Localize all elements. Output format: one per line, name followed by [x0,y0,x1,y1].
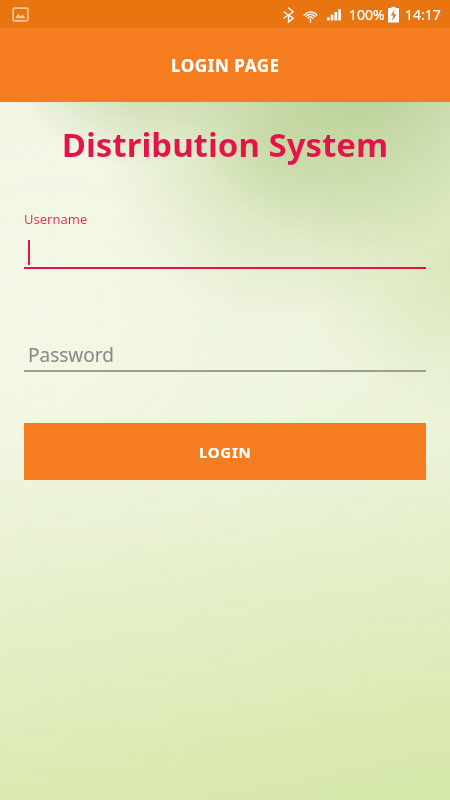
button[interactable]: Password [24,339,426,372]
button[interactable]: Username [24,210,426,269]
staticText: Username [24,210,88,228]
staticText: LOGIN [199,442,252,462]
staticText: 100% [349,5,385,24]
button[interactable]: LOGIN [24,423,426,480]
other: Screenshot captured [12,6,29,23]
staticText: LOGIN PAGE [171,54,280,77]
staticText: 14:17 [405,5,441,24]
staticText: Password [28,342,114,368]
staticText: Distribution System [0,122,450,167]
